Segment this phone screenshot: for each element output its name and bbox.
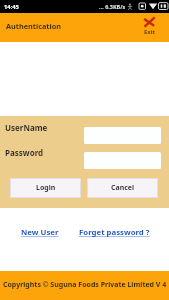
button[interactable]: Password field [84, 152, 161, 169]
staticText: Forget password ? [79, 227, 150, 238]
staticText: 14:45 [4, 3, 19, 11]
staticText: Copyrights © Suguna Foods Private Limite… [3, 280, 167, 290]
staticText: … 6.3KB/s [99, 3, 126, 10]
button[interactable]: Exit [140, 13, 160, 42]
staticText: Cancel [111, 183, 135, 193]
button[interactable]: Forget password ? [79, 227, 150, 238]
staticText: New User [21, 227, 59, 238]
button[interactable]: New User [21, 227, 59, 238]
button[interactable]: UserName field [84, 127, 161, 144]
staticText: Exit [144, 28, 156, 36]
staticText: Authentication [6, 21, 61, 31]
staticText: Password [5, 147, 44, 158]
button[interactable]: Login [10, 178, 81, 198]
button[interactable]: Cancel [87, 178, 158, 198]
staticText: Login [36, 183, 56, 193]
staticText: UserName [5, 122, 48, 133]
